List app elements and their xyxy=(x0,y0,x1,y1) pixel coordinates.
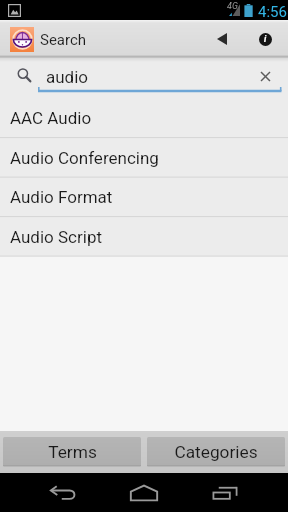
button[interactable]: Home xyxy=(104,473,184,512)
staticText: Audio Format xyxy=(10,187,113,207)
staticText: Audio Conferencing xyxy=(10,148,159,168)
button[interactable]: Back xyxy=(24,473,104,512)
staticText: Terms xyxy=(48,442,97,462)
button[interactable]: Terms xyxy=(3,437,141,467)
staticText: 4G xyxy=(227,1,238,12)
button[interactable]: Clear search xyxy=(250,61,280,91)
button[interactable]: Previous xyxy=(200,20,244,58)
staticText: Categories xyxy=(174,442,258,462)
button[interactable]: Search xyxy=(0,20,87,58)
button[interactable]: Audio Format xyxy=(0,177,288,217)
staticText: i xyxy=(264,34,267,45)
button[interactable]: Audio Script xyxy=(0,217,288,257)
button[interactable]: Categories xyxy=(147,437,285,467)
staticText: Audio Script xyxy=(10,227,102,247)
button[interactable]: Recent apps xyxy=(185,473,265,512)
button[interactable]: Info xyxy=(244,20,286,58)
button[interactable]: Audio Conferencing xyxy=(0,138,288,178)
button[interactable]: AAC Audio xyxy=(0,98,288,138)
staticText: AAC Audio xyxy=(10,108,92,128)
staticText: Search xyxy=(40,31,87,49)
staticText: audio xyxy=(46,67,89,87)
staticText: 4:56 xyxy=(258,3,287,21)
